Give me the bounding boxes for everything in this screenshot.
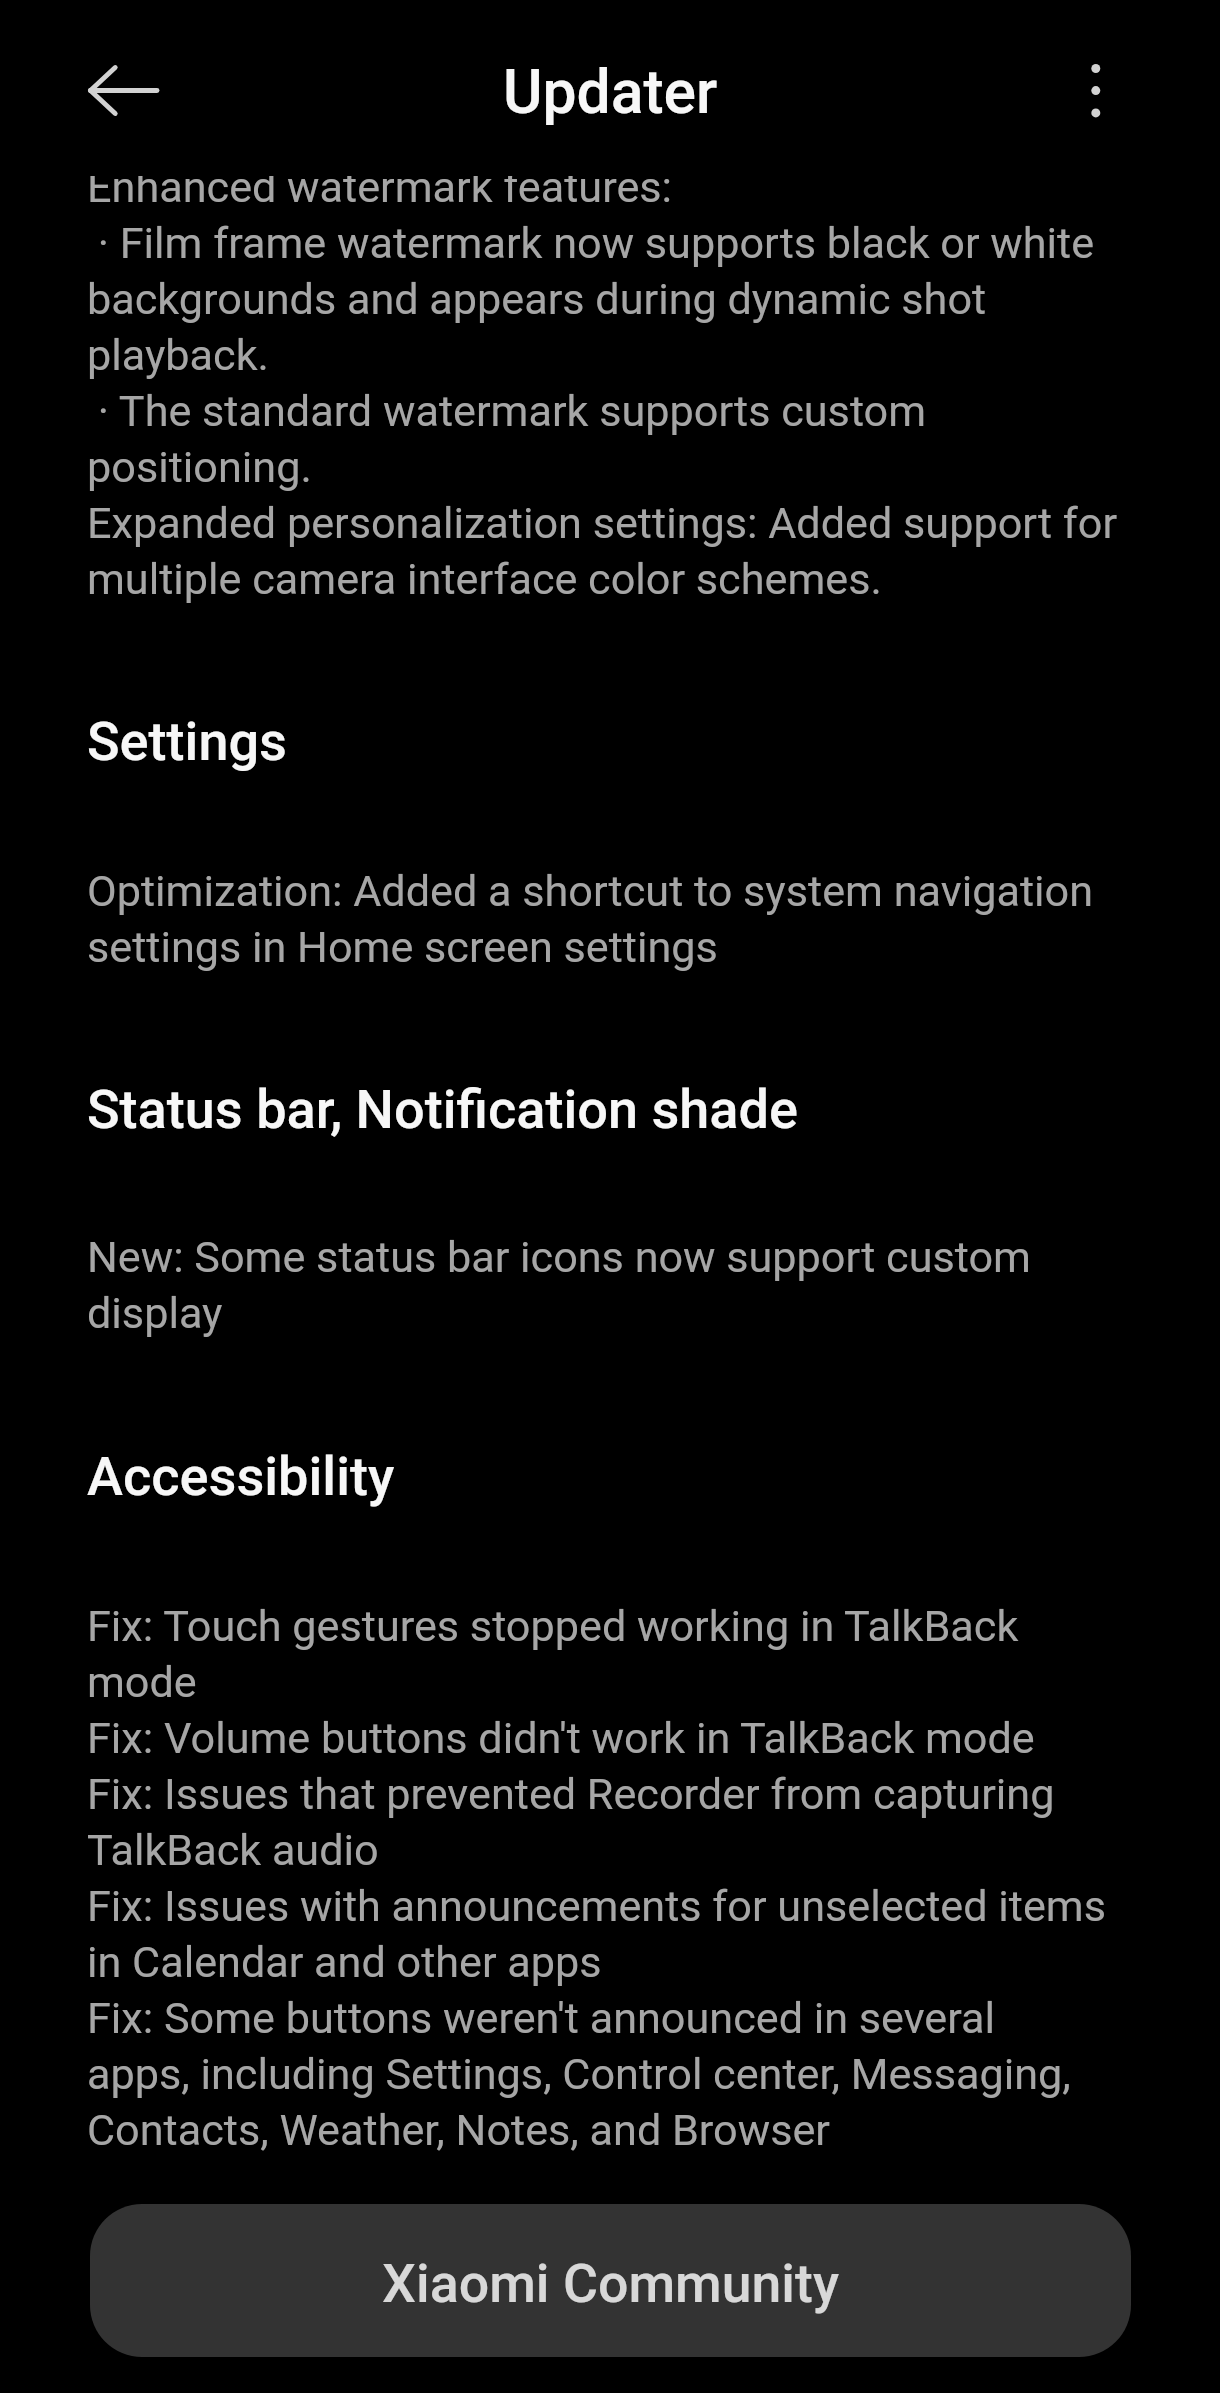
staticText: Fix: Touch gestures stopped working in T… <box>87 1597 1220 2157</box>
button[interactable]: More options <box>1051 45 1141 135</box>
button[interactable]: Back <box>45 45 135 135</box>
staticText: New: Some status bar icons now support c… <box>87 1228 1220 1340</box>
staticText: Accessibility <box>87 1444 1220 1508</box>
button[interactable]: Xiaomi Community <box>90 2204 1131 2357</box>
staticText: Xiaomi Community <box>382 2251 839 2315</box>
staticText: Settings <box>87 709 1220 773</box>
staticText: Status bar, Notification shade <box>87 1077 1220 1141</box>
staticText: Updater <box>503 54 718 128</box>
staticText: Enhanced watermark features: · Film fram… <box>87 158 1220 606</box>
staticText: Optimization: Added a shortcut to system… <box>87 862 1220 974</box>
